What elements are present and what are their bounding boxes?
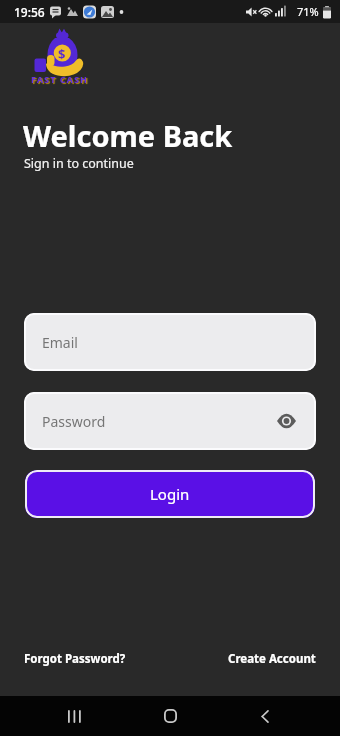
button[interactable]: Password	[24, 392, 316, 450]
staticText: Welcome Back	[23, 116, 233, 155]
button[interactable]: Login	[25, 470, 315, 518]
staticText: Login	[150, 484, 190, 504]
staticText: 19:56	[14, 4, 45, 20]
staticText: Email	[42, 333, 78, 352]
button[interactable]: Email	[24, 313, 316, 371]
staticText: Sign in to continue	[24, 155, 134, 172]
staticText: 71%	[297, 4, 319, 19]
button[interactable]	[43, 696, 107, 736]
button[interactable]: Create Account	[228, 651, 316, 667]
button[interactable]	[138, 696, 202, 736]
staticText: FAST CASH	[31, 73, 88, 85]
button[interactable]: Forgot Password?	[24, 651, 126, 667]
staticText: $	[58, 45, 66, 63]
button[interactable]	[233, 696, 297, 736]
staticText: Create Account	[228, 651, 316, 667]
staticText: Password	[42, 412, 106, 431]
staticText: Forgot Password?	[24, 651, 126, 667]
